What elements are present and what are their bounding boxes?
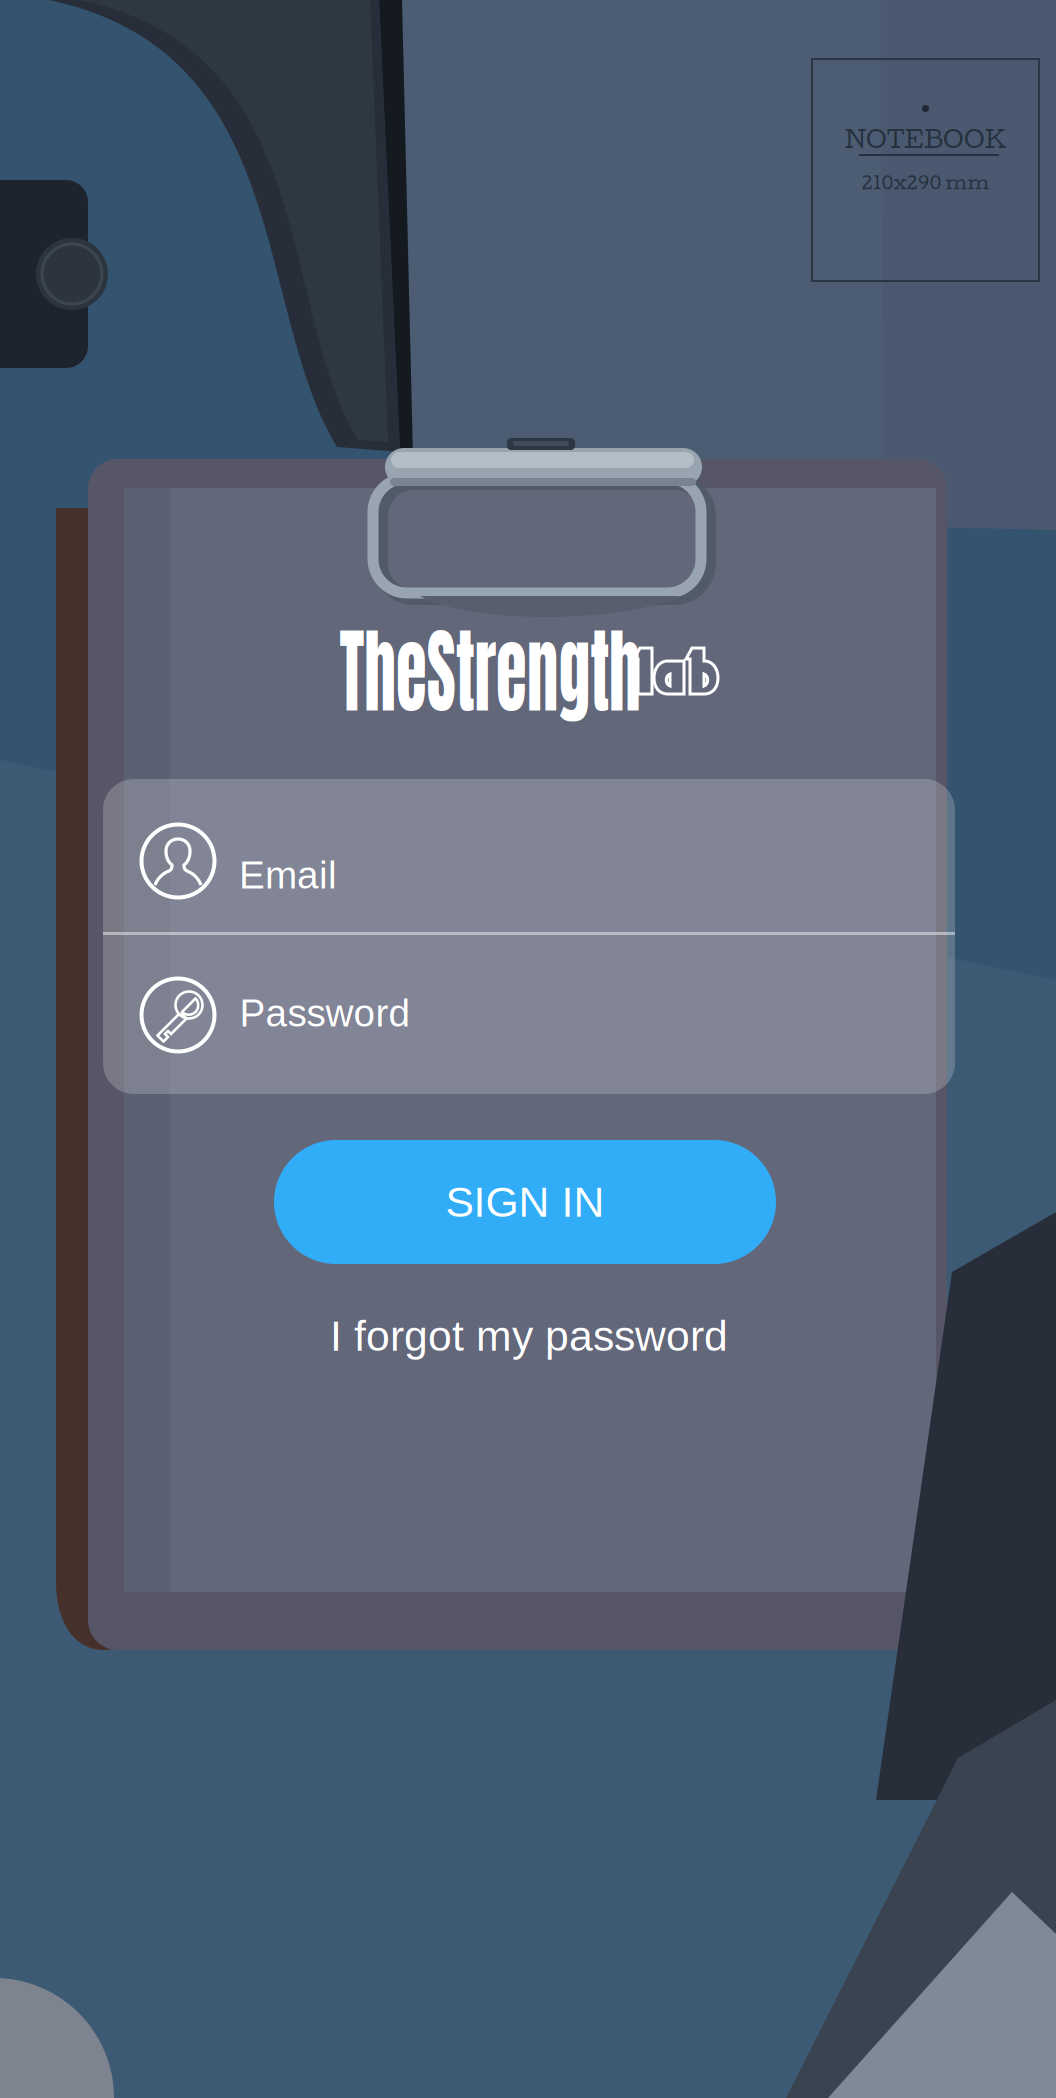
button[interactable]: Password	[103, 935, 955, 1094]
staticText: I forgot my password	[330, 1312, 728, 1360]
staticText: Password	[239, 991, 410, 1035]
button[interactable]: I forgot my password	[289, 1303, 769, 1369]
button[interactable]: Email	[103, 779, 955, 933]
staticText: Email	[239, 853, 337, 897]
button[interactable]: SIGN IN	[274, 1140, 776, 1264]
staticText: SIGN IN	[445, 1178, 604, 1226]
staticText: NOTEBOOK	[845, 125, 1006, 153]
staticText: TheStrength	[266, 601, 714, 741]
staticText: 210x290 mm	[861, 171, 989, 193]
